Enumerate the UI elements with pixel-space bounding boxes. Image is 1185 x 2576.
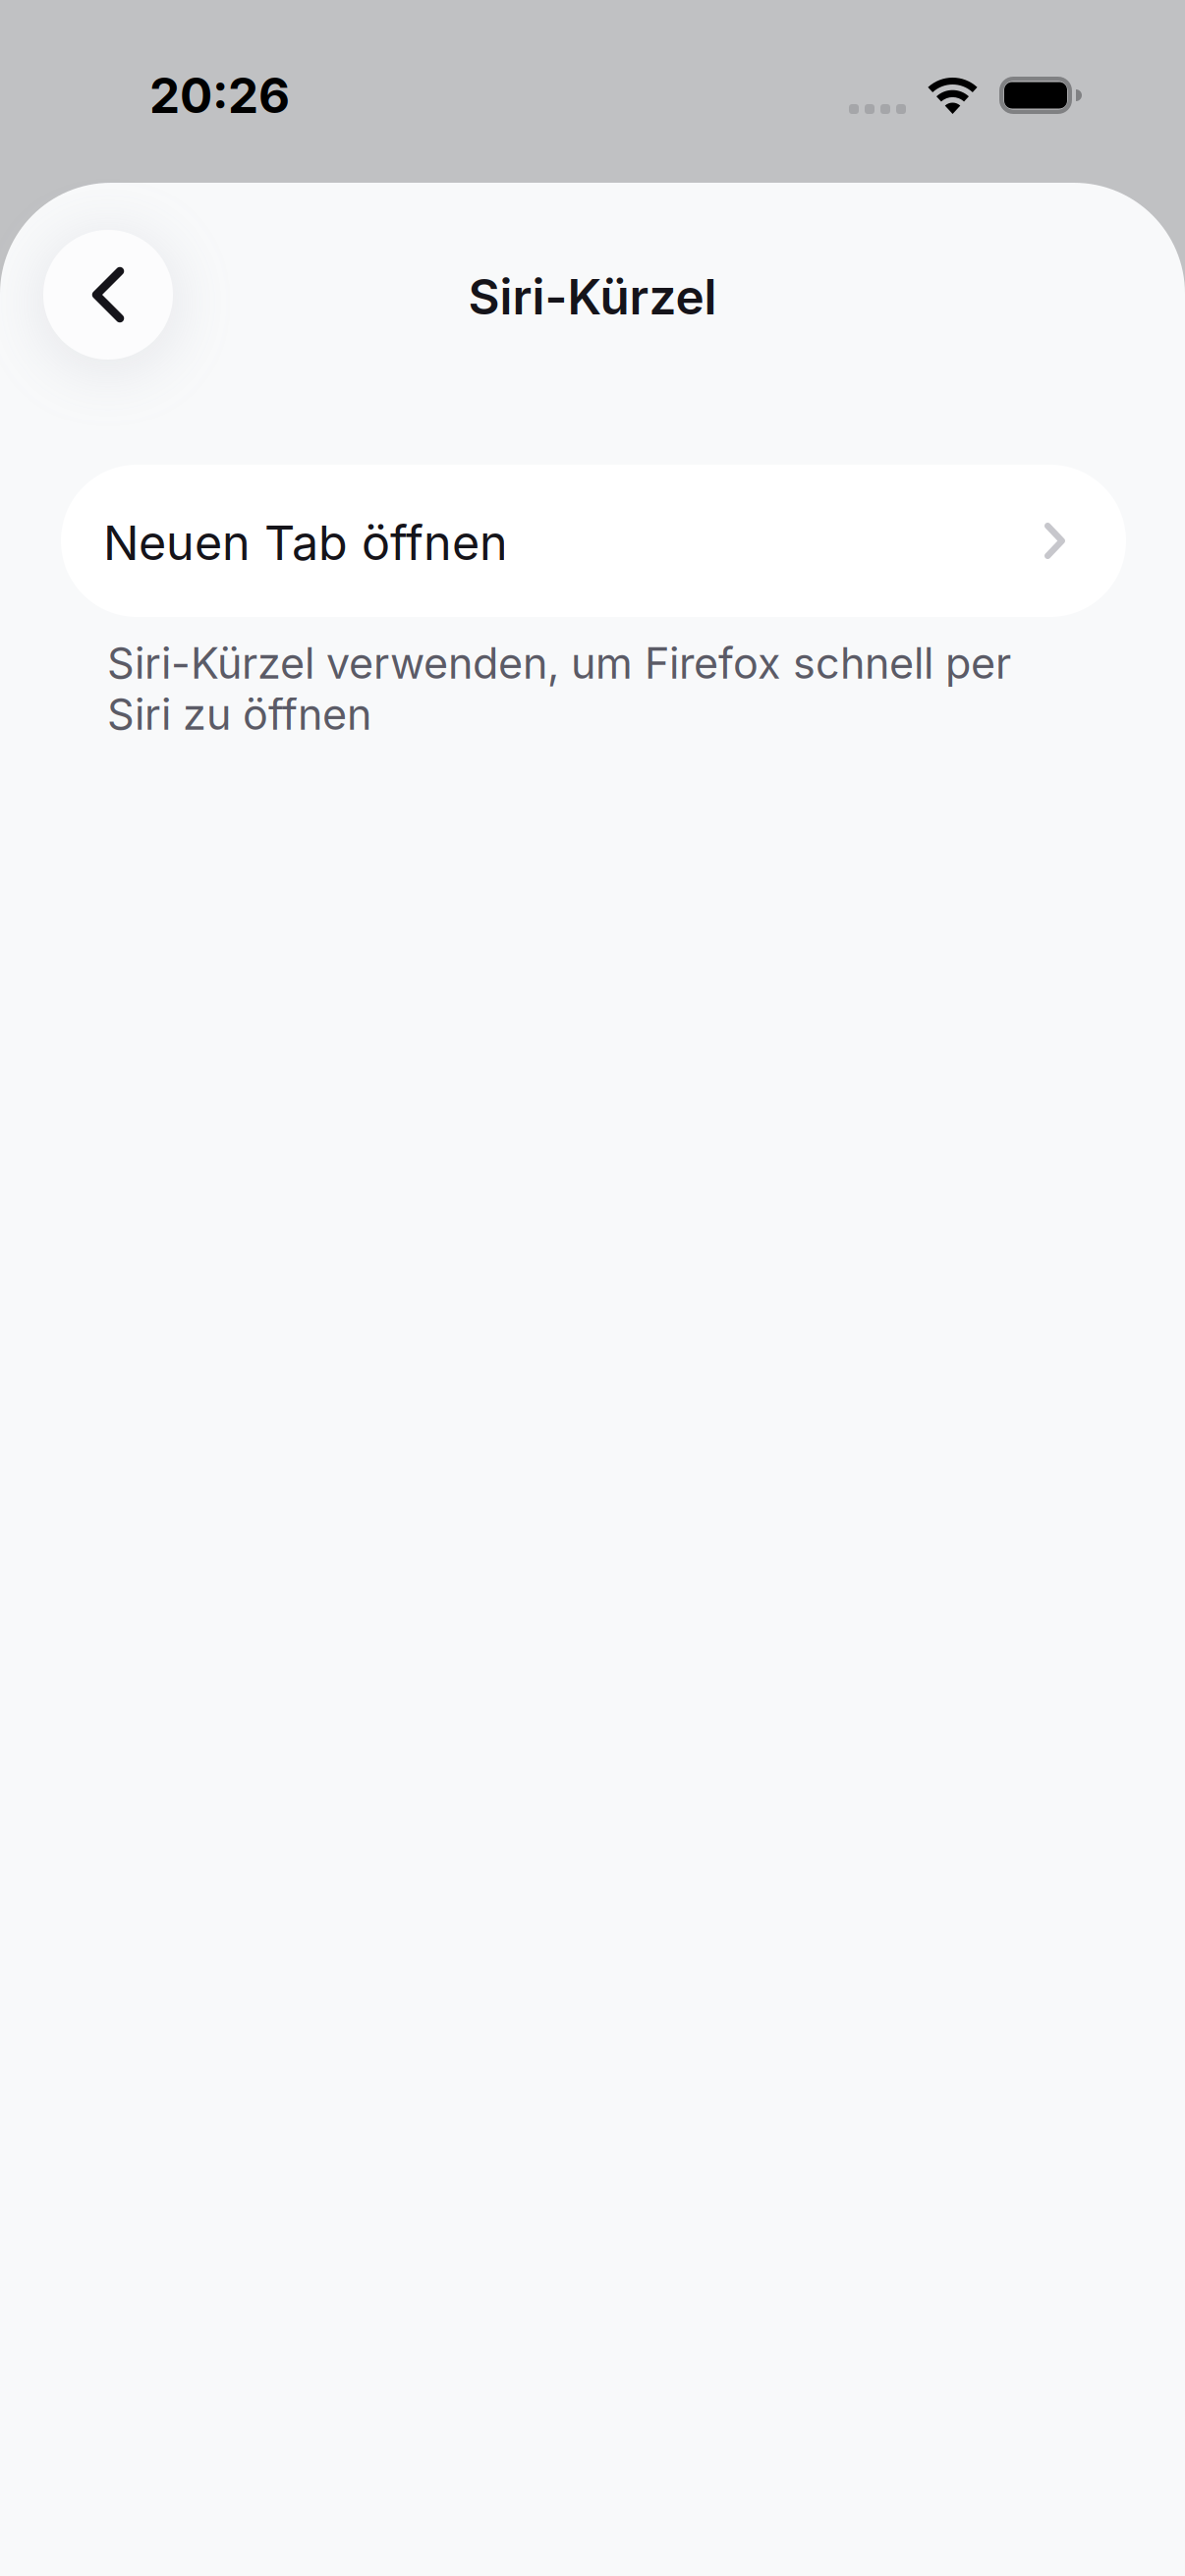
staticText: 20:26 [149, 66, 290, 125]
staticText: Siri-Kürzel [468, 267, 717, 326]
button[interactable]: Neuen Tab öffnen [61, 465, 1126, 617]
staticText: Neuen Tab öffnen [103, 514, 508, 572]
staticText: Siri-Kürzel verwenden, um Firefox schnel… [107, 638, 1011, 740]
button[interactable]: Zurück [43, 230, 173, 360]
